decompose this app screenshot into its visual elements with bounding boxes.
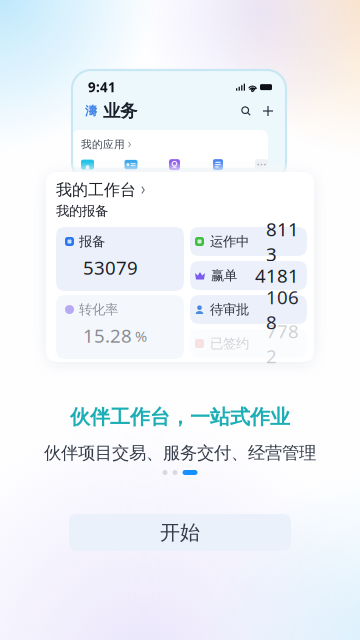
staticText: 待审批	[210, 301, 249, 318]
staticText: 我的报备	[56, 203, 108, 219]
staticText: 伙伴工作台，一站式作业	[70, 405, 290, 429]
staticText: 我的应用	[81, 138, 125, 151]
staticText: 濤	[85, 104, 97, 118]
button[interactable]: 转化率	[56, 295, 184, 359]
staticText: 我的工作台	[56, 180, 136, 200]
button[interactable]: 开始	[69, 514, 291, 551]
staticText: 8113	[266, 217, 299, 266]
staticText: 1068	[266, 285, 299, 334]
staticText: 业务	[103, 100, 137, 122]
button[interactable]: 运作中	[190, 227, 307, 256]
staticText: 报备	[79, 233, 105, 250]
button[interactable]: 待审批	[190, 295, 307, 324]
staticText: 赢单	[211, 267, 237, 284]
button[interactable]: 我的工作台	[56, 183, 145, 197]
staticText: 运作中	[210, 233, 249, 250]
staticText: 53079	[83, 255, 138, 280]
staticText: 7782	[266, 319, 299, 368]
button[interactable]: 赢单	[190, 261, 307, 290]
staticText: 伙伴项目交易、服务交付、经营管理	[44, 442, 316, 464]
staticText: %	[135, 326, 147, 346]
button[interactable]: 报备	[56, 227, 184, 291]
staticText: 4181	[255, 263, 299, 288]
staticText: 已签约	[210, 335, 249, 352]
button[interactable]: 已签约	[190, 329, 307, 358]
staticText: 15.28	[83, 323, 132, 348]
staticText: 转化率	[79, 301, 118, 318]
staticText: 开始	[160, 520, 200, 545]
staticText: 9:41	[88, 78, 116, 96]
